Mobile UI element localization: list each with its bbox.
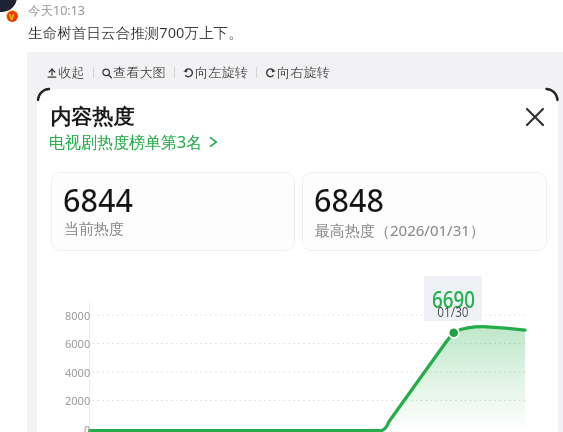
staticText: V [9,11,15,22]
staticText: 6000 [65,336,91,351]
button[interactable]: 电视剧热度榜单第3名 [49,131,218,153]
button[interactable]: 6844 [51,172,295,251]
staticText: 8000 [65,308,91,323]
button[interactable]: 查看大图 [102,59,166,86]
staticText: 内容热度 [50,104,134,130]
staticText: 01/30 [437,303,469,321]
staticText: 6844 [63,178,134,222]
staticText: 电视剧热度榜单第3名 [49,131,203,153]
button[interactable]: 关闭 [521,103,549,131]
staticText: 生命树首日云合推测700万上下。 [28,22,243,42]
staticText: 最高热度（2026/01/31） [315,220,485,240]
staticText: 向左旋转 [195,64,248,81]
button[interactable]: 6848 [302,172,547,251]
staticText: 4000 [65,365,91,380]
button[interactable]: 向右旋转 [265,59,330,86]
button[interactable]: 向左旋转 [183,59,248,86]
staticText: 查看大图 [113,64,166,81]
staticText: 收起 [58,64,85,81]
staticText: 当前热度 [64,220,124,239]
staticText: 今天10:13 [28,2,85,19]
staticText: 6690 [432,282,475,315]
staticText: 6848 [314,178,385,222]
button[interactable]: 收起 [47,59,85,86]
staticText: 向右旋转 [277,64,330,81]
staticText: 0 [84,422,91,432]
staticText: 2000 [65,393,91,408]
